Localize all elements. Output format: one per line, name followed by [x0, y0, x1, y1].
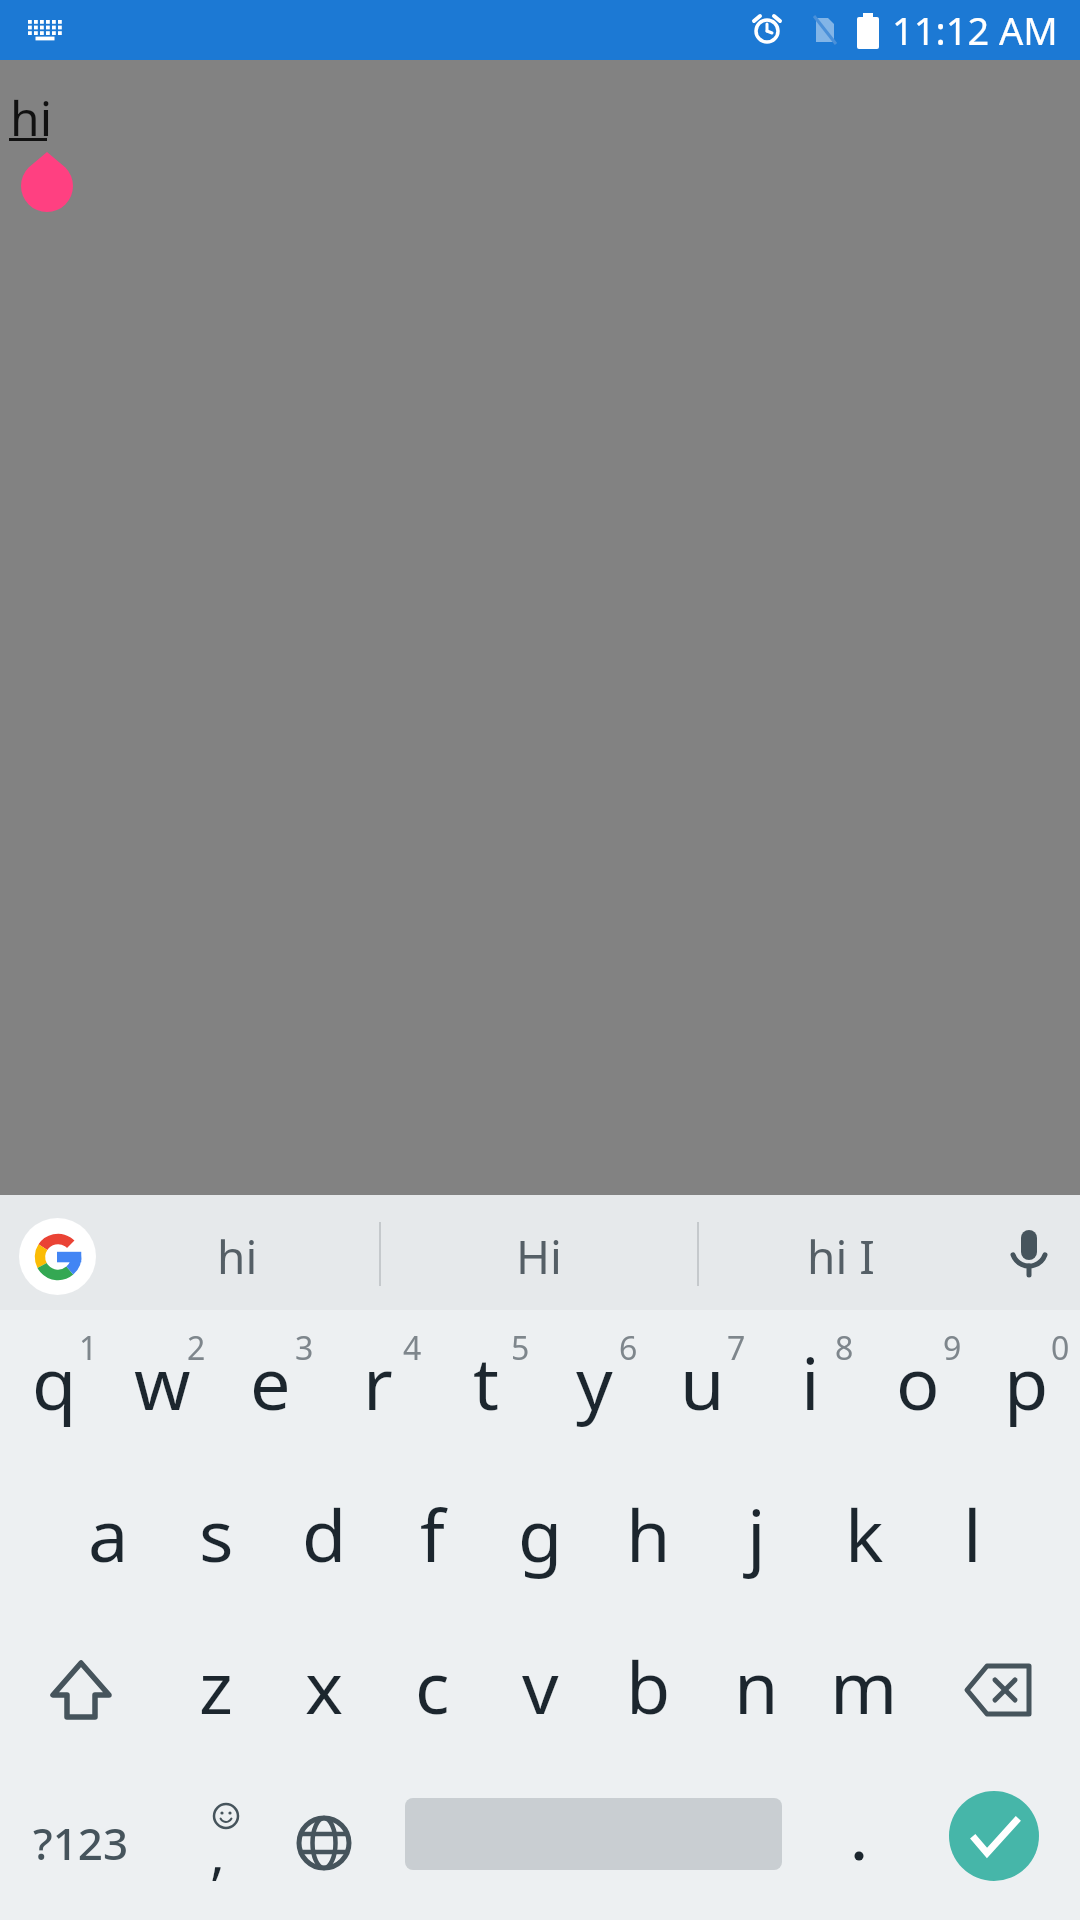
button[interactable]: x — [270, 1614, 378, 1766]
staticText: 9 — [943, 1326, 962, 1370]
staticText: f — [420, 1485, 445, 1583]
button[interactable] — [0, 1614, 162, 1766]
staticText: b — [626, 1637, 671, 1735]
staticText: 11:12 AM — [892, 4, 1058, 56]
staticText: u — [680, 1333, 725, 1431]
staticText: a — [88, 1485, 129, 1583]
button[interactable]: o — [864, 1310, 972, 1462]
staticText: o — [896, 1333, 940, 1431]
button[interactable]: l — [918, 1462, 1026, 1614]
staticText: e — [250, 1333, 291, 1431]
staticText: 8 — [835, 1326, 854, 1370]
staticText: q — [32, 1333, 77, 1431]
staticText: , — [210, 1814, 226, 1890]
staticText: l — [963, 1485, 982, 1583]
staticText: x — [305, 1637, 344, 1735]
button[interactable]: q — [0, 1310, 108, 1462]
staticText: hi — [217, 1225, 258, 1288]
button[interactable]: ?123 — [0, 1766, 162, 1920]
staticText: ?123 — [33, 1813, 129, 1873]
button[interactable]: c — [378, 1614, 486, 1766]
staticText: v — [522, 1637, 559, 1735]
button[interactable]: d — [270, 1462, 378, 1614]
staticText: hi I — [807, 1225, 875, 1288]
button[interactable]: g — [486, 1462, 594, 1614]
staticText: s — [199, 1485, 234, 1583]
staticText: j — [747, 1485, 766, 1583]
button[interactable]: u — [648, 1310, 756, 1462]
button[interactable]: i — [756, 1310, 864, 1462]
button[interactable]: t — [432, 1310, 540, 1462]
staticText: 0 — [1051, 1326, 1070, 1370]
staticText: c — [415, 1637, 450, 1735]
button[interactable]: r — [324, 1310, 432, 1462]
staticText: p — [1004, 1333, 1049, 1431]
button[interactable]: p — [972, 1310, 1080, 1462]
button[interactable]: v — [486, 1614, 594, 1766]
button[interactable]: j — [702, 1462, 810, 1614]
button[interactable] — [270, 1766, 378, 1920]
button[interactable]: Hi — [381, 1195, 697, 1310]
button[interactable]: m — [810, 1614, 918, 1766]
button[interactable]: s — [162, 1462, 270, 1614]
staticText: d — [302, 1485, 347, 1583]
button[interactable]: hi I — [699, 1195, 982, 1310]
staticText: i — [801, 1333, 820, 1431]
staticText: w — [134, 1333, 191, 1431]
staticText: 1 — [79, 1326, 98, 1370]
button[interactable] — [805, 1766, 913, 1920]
button[interactable] — [19, 1218, 96, 1295]
button[interactable]: h — [594, 1462, 702, 1614]
button[interactable]: y — [540, 1310, 648, 1462]
button[interactable]: n — [702, 1614, 810, 1766]
button[interactable]: hi — [96, 1195, 379, 1310]
staticText: 2 — [187, 1326, 206, 1370]
button[interactable]: e — [216, 1310, 324, 1462]
button[interactable]: w — [108, 1310, 216, 1462]
button[interactable]: a — [54, 1462, 162, 1614]
staticText: 6 — [619, 1326, 638, 1370]
staticText: 4 — [403, 1326, 422, 1370]
button[interactable] — [949, 1791, 1039, 1881]
staticText: g — [518, 1485, 563, 1583]
staticText: hi — [10, 85, 53, 150]
staticText: 7 — [727, 1326, 746, 1370]
staticText: n — [734, 1637, 779, 1735]
button[interactable]: k — [810, 1462, 918, 1614]
button[interactable]: z — [162, 1614, 270, 1766]
staticText: z — [199, 1637, 233, 1735]
staticText: 3 — [295, 1326, 314, 1370]
button[interactable]: b — [594, 1614, 702, 1766]
staticText: t — [473, 1333, 499, 1431]
button[interactable]: , — [162, 1766, 270, 1920]
button[interactable]: f — [378, 1462, 486, 1614]
button[interactable] — [918, 1614, 1080, 1766]
staticText: h — [626, 1485, 671, 1583]
staticText: Hi — [516, 1225, 562, 1288]
staticText: k — [845, 1485, 884, 1583]
staticText: r — [363, 1333, 393, 1431]
button[interactable] — [990, 1215, 1068, 1293]
staticText: y — [576, 1333, 613, 1431]
staticText: 5 — [511, 1326, 530, 1370]
staticText: m — [830, 1637, 898, 1735]
